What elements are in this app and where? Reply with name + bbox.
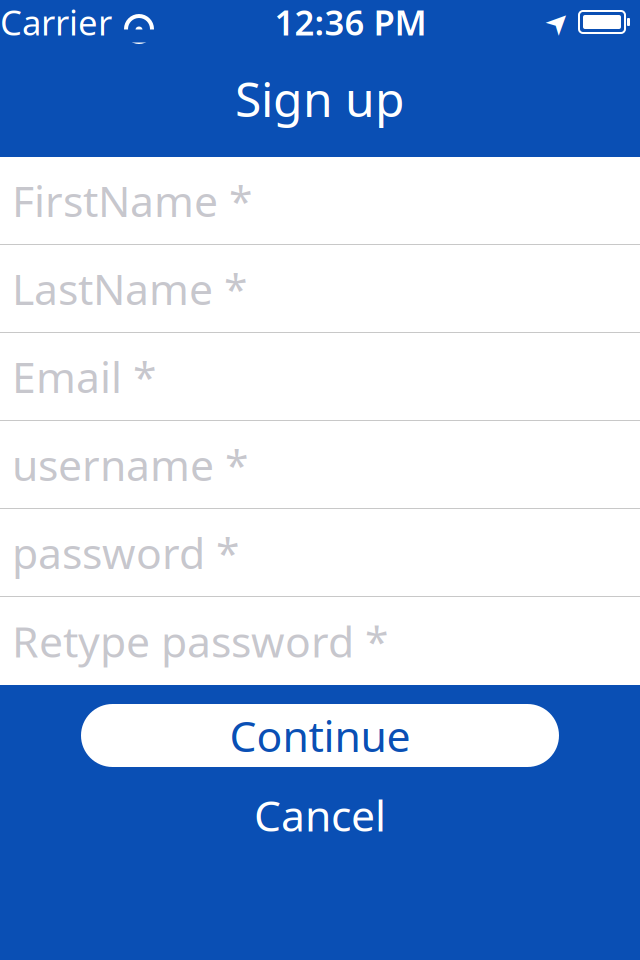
button[interactable]: Continue (81, 704, 559, 767)
staticText: Retype password * (12, 613, 389, 669)
staticText: ➤ (545, 5, 570, 39)
button[interactable]: FirstName * (0, 157, 640, 245)
button[interactable]: username * (0, 421, 640, 509)
button[interactable]: LastName * (0, 245, 640, 333)
button[interactable]: Email * (0, 333, 640, 421)
staticText: username * (12, 436, 249, 493)
staticText: password * (12, 524, 240, 581)
staticText: FirstName * (12, 172, 253, 229)
staticText: Continue (229, 707, 410, 764)
button[interactable]: password * (0, 509, 640, 597)
staticText: Carrier (0, 0, 112, 45)
staticText: LastName * (12, 260, 248, 317)
button[interactable]: Retype password * (0, 597, 640, 685)
staticText: 12:36 PM (274, 0, 426, 45)
staticText: Cancel (254, 787, 386, 843)
staticText: Email * (12, 348, 157, 405)
button[interactable]: Cancel (81, 793, 559, 837)
staticText: Sign up (235, 67, 405, 130)
